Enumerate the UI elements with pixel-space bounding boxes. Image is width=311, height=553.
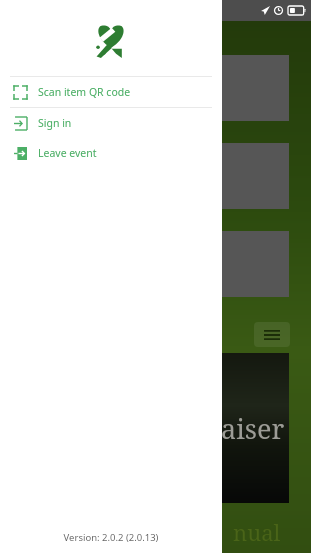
button[interactable]: Scan item QR code: [0, 77, 222, 107]
staticText: Scan item QR code: [38, 85, 131, 99]
staticText: aiser: [221, 410, 285, 447]
button[interactable]: Menu: [254, 322, 290, 347]
button[interactable]: Leave event: [0, 138, 222, 168]
button[interactable]: Sign in: [0, 108, 222, 138]
staticText: nual: [233, 517, 281, 547]
staticText: Version: 2.0.2 (2.0.13): [0, 531, 222, 544]
staticText: Leave event: [38, 146, 97, 160]
staticText: Sign in: [38, 116, 72, 130]
